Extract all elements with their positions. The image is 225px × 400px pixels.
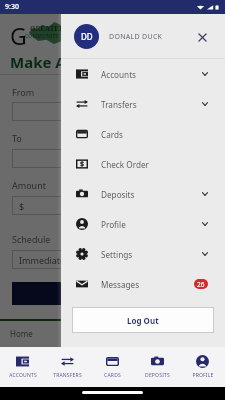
- button[interactable]: Profile: [61, 209, 225, 239]
- staticText: $: [19, 200, 25, 212]
- staticText: Help: [197, 328, 215, 339]
- button[interactable]: Close drawer: [192, 27, 212, 47]
- staticText: Contact Us: [95, 328, 136, 339]
- staticText: DEPOSITS: [145, 372, 170, 379]
- button[interactable]: Settings: [61, 239, 225, 269]
- button[interactable]: Cards: [61, 119, 225, 149]
- staticText: Schedule: [12, 233, 51, 245]
- button[interactable]: Check Order: [61, 149, 225, 179]
- staticText: To: [12, 132, 22, 144]
- staticText: Amount: [12, 179, 46, 191]
- staticText: Log Out: [127, 315, 159, 326]
- staticText: Home: [10, 328, 33, 339]
- staticText: COMMUNITY BANK: [25, 33, 77, 40]
- staticText: CARDS: [104, 372, 121, 379]
- staticText: G: [10, 20, 27, 48]
- staticText: DD: [81, 31, 93, 42]
- staticText: TRANSFERS: [53, 372, 82, 379]
- button[interactable]: PROFILE: [180, 347, 225, 387]
- button[interactable]: TRANSFERS: [45, 347, 90, 387]
- staticText: GREATER: [30, 24, 64, 34]
- staticText: 26: [197, 280, 205, 289]
- button[interactable]: Log Out: [72, 307, 214, 333]
- button[interactable]: CARDS: [90, 347, 135, 387]
- staticText: Cards: [101, 129, 123, 140]
- staticText: PROFILE: [192, 372, 214, 379]
- staticText: Messages: [101, 279, 140, 290]
- staticText: Immediate: [19, 254, 66, 266]
- staticText: DONALD DUCK: [109, 32, 163, 42]
- button[interactable]: Accounts: [61, 59, 225, 89]
- button[interactable]: Deposits: [61, 179, 225, 209]
- staticText: SUBMIT: [94, 288, 131, 300]
- staticText: Transfers: [101, 99, 137, 110]
- button[interactable]: Messages: [61, 269, 225, 299]
- button[interactable]: Transfers: [61, 89, 225, 119]
- staticText: From: [12, 86, 35, 98]
- button[interactable]: ACCOUNTS: [0, 347, 45, 387]
- staticText: Check Order: [101, 159, 149, 170]
- staticText: Settings: [101, 249, 133, 260]
- staticText: Deposits: [101, 189, 135, 200]
- staticText: Profile: [101, 219, 126, 230]
- staticText: 9:30: [5, 2, 19, 12]
- staticText: Accounts: [101, 69, 137, 80]
- staticText: ACCOUNTS: [9, 372, 37, 379]
- staticText: Make A Transfer: [10, 52, 132, 72]
- button[interactable]: DEPOSITS: [135, 347, 180, 387]
- button[interactable]: SUBMIT: [12, 282, 213, 305]
